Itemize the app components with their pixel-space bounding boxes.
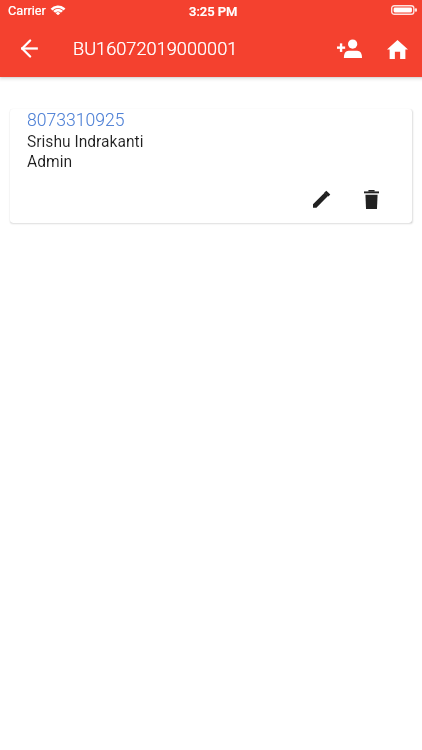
button[interactable]: Back [8,27,51,70]
button[interactable]: Home [376,28,419,71]
staticText: 3:25 PM [189,4,238,19]
staticText: Carrier [8,3,46,18]
staticText: Admin [27,153,73,171]
button[interactable]: Edit [303,180,341,218]
button[interactable]: 8073310925 [10,109,412,223]
staticText: 8073310925 [27,110,125,131]
staticText: Srishu Indrakanti [27,133,144,151]
button[interactable]: Add person [328,27,371,70]
button[interactable]: Delete [352,180,390,218]
staticText: BU16072019000001 [73,38,238,59]
